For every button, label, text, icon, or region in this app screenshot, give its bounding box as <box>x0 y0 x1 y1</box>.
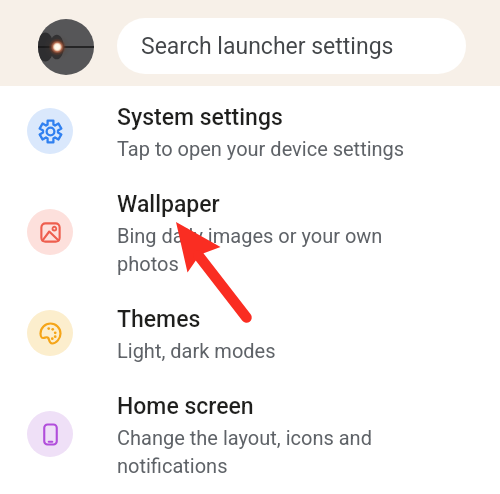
button[interactable]: Profile <box>38 19 94 75</box>
staticText: Tap to open your device settings <box>117 137 405 160</box>
staticText: Bing daily images or your own photos <box>117 224 407 275</box>
staticText: Light, dark modes <box>117 339 276 362</box>
button[interactable]: System settings <box>0 86 500 176</box>
staticText: Home screen <box>117 393 254 420</box>
staticText: System settings <box>117 104 283 131</box>
button[interactable]: Wallpaper <box>0 176 500 288</box>
staticText: Search launcher settings <box>141 33 394 60</box>
staticText: Themes <box>117 306 201 333</box>
button[interactable]: Search launcher settings <box>117 18 466 74</box>
button[interactable]: Home screen <box>0 378 500 490</box>
staticText: Wallpaper <box>117 191 220 218</box>
staticText: Change the layout, icons and notificatio… <box>117 426 407 477</box>
button[interactable]: Themes <box>0 288 500 378</box>
